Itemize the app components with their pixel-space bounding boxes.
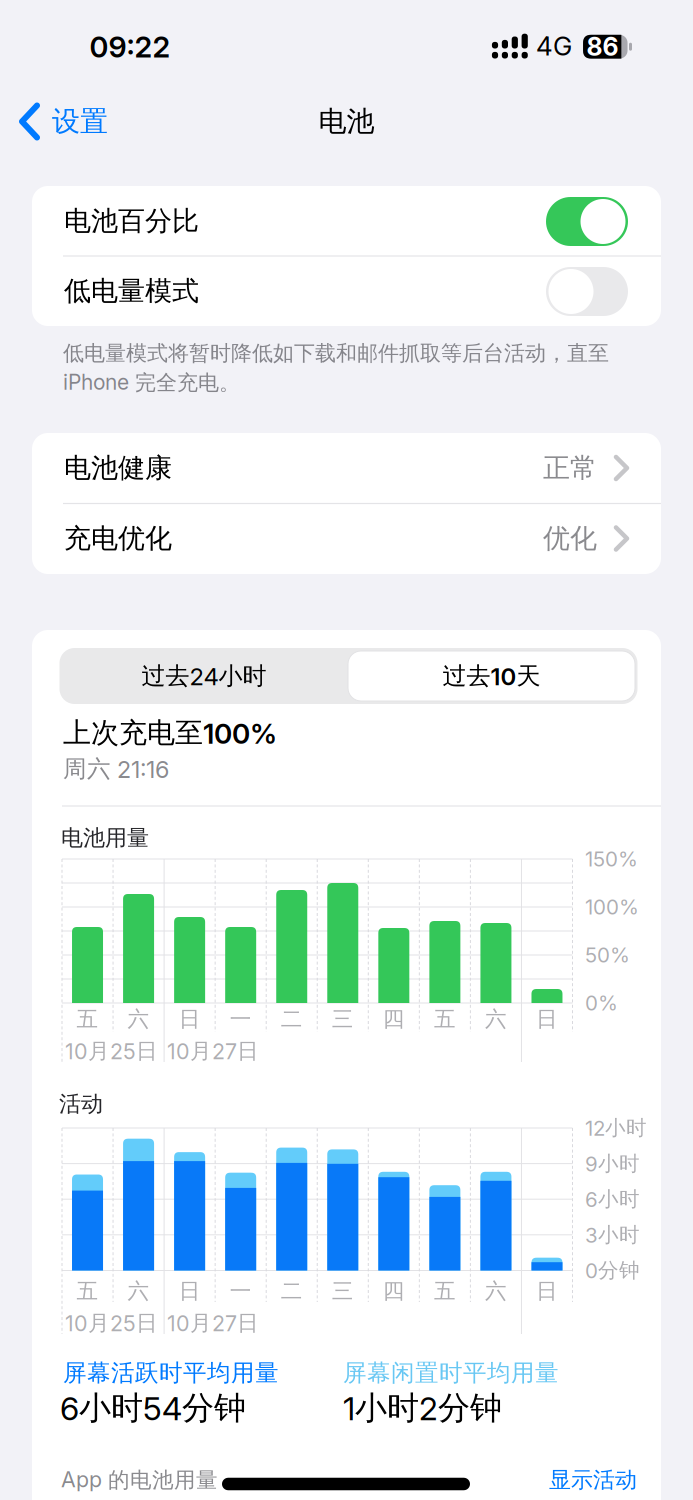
button[interactable]: 低电量模式 <box>32 256 661 326</box>
staticText: 6小时54分钟 <box>60 1388 246 1428</box>
staticText: 电池健康 <box>64 451 172 485</box>
staticText: 6小时 <box>585 1186 640 1212</box>
staticText: 六 <box>128 1005 150 1033</box>
staticText: 10月25日 <box>65 1037 158 1065</box>
staticText: 10月27日 <box>167 1037 259 1065</box>
staticText: 电池 <box>318 104 374 139</box>
staticText: 显示活动 <box>549 1466 637 1494</box>
staticText: 五 <box>434 1277 456 1305</box>
staticText: 150% <box>585 847 638 871</box>
button[interactable]: 过去24小时 <box>64 651 344 701</box>
staticText: 五 <box>434 1005 456 1033</box>
staticText: 五 <box>76 1005 98 1033</box>
button[interactable]: 过去10天 <box>348 651 635 701</box>
staticText: 3小时 <box>585 1222 640 1248</box>
button[interactable]: 设置 <box>22 99 142 143</box>
staticText: 六 <box>485 1005 507 1033</box>
staticText: 日 <box>179 1005 201 1033</box>
staticText: 低电量模式将暂时降低如下载和邮件抓取等后台活动，直至 <box>63 340 609 366</box>
staticText: 0% <box>585 991 618 1015</box>
staticText: 电池百分比 <box>64 204 199 238</box>
button[interactable]: 电池健康 <box>32 433 661 503</box>
staticText: 二 <box>281 1277 303 1305</box>
staticText: 86 <box>586 32 618 62</box>
staticText: 1小时2分钟 <box>343 1388 502 1428</box>
button[interactable]: 电池百分比 <box>32 186 661 256</box>
staticText: 三 <box>332 1277 354 1305</box>
button[interactable]: 充电优化 <box>32 503 661 573</box>
staticText: 过去24小时 <box>141 661 266 691</box>
staticText: 一 <box>230 1277 252 1305</box>
staticText: 09:22 <box>89 29 170 65</box>
staticText: 低电量模式 <box>64 274 199 308</box>
staticText: 周六 21:16 <box>63 754 169 784</box>
staticText: 日 <box>179 1277 201 1305</box>
staticText: 一 <box>230 1005 252 1033</box>
staticText: 50% <box>585 943 630 967</box>
staticText: App 的电池用量 <box>61 1466 218 1494</box>
staticText: 五 <box>76 1277 98 1305</box>
staticText: 10月25日 <box>65 1309 158 1337</box>
button[interactable]: 显示活动 <box>507 1460 637 1500</box>
staticText: 设置 <box>52 104 108 139</box>
staticText: 充电优化 <box>64 521 172 555</box>
staticText: 六 <box>485 1277 507 1305</box>
staticText: 四 <box>383 1277 405 1305</box>
staticText: 上次充电至100% <box>63 715 277 751</box>
staticText: 屏幕活跃时平均用量 <box>63 1358 279 1388</box>
staticText: 0分钟 <box>585 1258 640 1283</box>
staticText: 12小时 <box>585 1115 647 1141</box>
staticText: 六 <box>128 1277 150 1305</box>
staticText: 4G <box>536 30 572 62</box>
staticText: 屏幕闲置时平均用量 <box>343 1358 559 1388</box>
staticText: 活动 <box>59 1090 103 1118</box>
staticText: 二 <box>281 1005 303 1033</box>
staticText: 日 <box>536 1005 558 1033</box>
staticText: 10月27日 <box>167 1309 259 1337</box>
staticText: 9小时 <box>585 1151 640 1176</box>
staticText: 电池用量 <box>61 824 149 852</box>
staticText: 四 <box>383 1005 405 1033</box>
staticText: 正常 <box>543 451 597 485</box>
staticText: iPhone 完全充电。 <box>63 369 240 396</box>
staticText: 日 <box>536 1277 558 1305</box>
staticText: 优化 <box>543 521 597 555</box>
staticText: 三 <box>332 1005 354 1033</box>
staticText: 100% <box>585 895 639 919</box>
staticText: 过去10天 <box>442 661 540 691</box>
